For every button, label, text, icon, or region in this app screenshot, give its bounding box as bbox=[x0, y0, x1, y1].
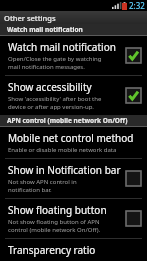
button[interactable]: Show accessibility bbox=[0, 76, 147, 115]
staticText: Open/Close the gate by watching mail not… bbox=[8, 55, 102, 71]
button[interactable]: Transparency ratio bbox=[0, 239, 147, 261]
staticText: Transparency ratio bbox=[8, 243, 96, 257]
button[interactable]: Enabled bbox=[125, 47, 142, 64]
staticText: Watch mail notification bbox=[8, 40, 116, 54]
staticText: Not show APN control in notification bar… bbox=[8, 178, 77, 194]
button[interactable]: Show floating button bbox=[0, 199, 147, 238]
staticText: 2:32 bbox=[129, 0, 145, 11]
staticText: Show accessibility bbox=[8, 80, 92, 94]
button[interactable]: Enabled bbox=[125, 87, 142, 104]
button[interactable]: Disabled bbox=[125, 170, 142, 187]
staticText: Mobile net control method bbox=[8, 131, 134, 145]
staticText: Other settings bbox=[4, 13, 56, 23]
staticText: Show floating button bbox=[8, 203, 107, 217]
button[interactable]: Disabled bbox=[125, 210, 142, 227]
staticText: Show 'accessibility' after boot the devi… bbox=[8, 95, 102, 111]
button[interactable]: Mobile net control method bbox=[0, 127, 147, 158]
staticText: Watch mail notification bbox=[7, 25, 83, 34]
staticText: Not show floating button of APN control … bbox=[8, 218, 101, 234]
staticText: Enable or disable mobile network data bbox=[8, 146, 117, 154]
staticText: Show in Notification bar bbox=[8, 163, 121, 177]
staticText: APN control (mobile network On/Off) bbox=[7, 116, 128, 125]
button[interactable]: Other settings bbox=[0, 11, 147, 24]
button[interactable]: Watch mail notification bbox=[0, 36, 147, 75]
button[interactable]: Show in Notification bar bbox=[0, 159, 147, 198]
